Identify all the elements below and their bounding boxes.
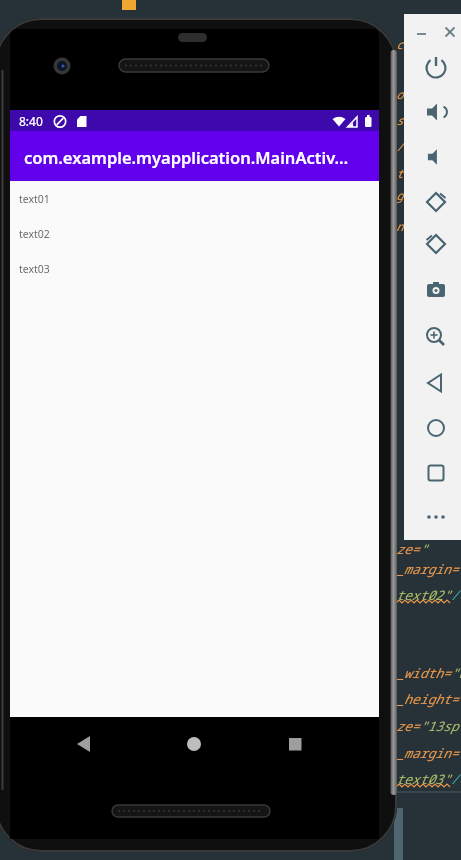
staticText: _width="w <box>396 664 461 682</box>
staticText: co <box>396 36 411 52</box>
button[interactable] <box>422 414 450 442</box>
button[interactable] <box>422 459 450 487</box>
staticText: com.example.myapplication.MainActiv… <box>24 146 349 168</box>
staticText: o: <box>396 86 411 102</box>
button[interactable] <box>422 143 450 171</box>
staticText: gh <box>396 187 411 203</box>
staticText: n= <box>396 218 411 234</box>
button[interactable] <box>422 369 450 397</box>
staticText: ze="13sp" <box>396 717 461 735</box>
staticText: _height=" <box>396 690 461 708</box>
button[interactable]: text02 <box>19 227 50 241</box>
button[interactable] <box>71 731 97 757</box>
staticText: // <box>396 138 411 154</box>
button[interactable] <box>414 24 430 40</box>
button[interactable] <box>282 731 308 757</box>
staticText: _margin=" <box>396 744 461 762</box>
staticText: so <box>396 112 411 128</box>
button[interactable] <box>442 24 458 40</box>
staticText: _margin=" <box>396 560 461 578</box>
button[interactable] <box>422 98 450 126</box>
staticText: ze=" <box>396 540 428 558</box>
staticText: text03"/> <box>396 770 461 788</box>
button[interactable]: text01 <box>19 192 50 206</box>
button[interactable] <box>422 230 450 258</box>
button[interactable] <box>181 731 207 757</box>
button[interactable]: text03 <box>19 262 50 276</box>
staticText: th <box>396 165 411 181</box>
button[interactable] <box>422 276 450 304</box>
button[interactable] <box>422 54 450 82</box>
button[interactable] <box>422 323 450 351</box>
button[interactable] <box>422 497 450 525</box>
staticText: text02"/> <box>396 586 461 604</box>
button[interactable] <box>422 188 450 216</box>
staticText: 8:40 <box>19 113 43 129</box>
